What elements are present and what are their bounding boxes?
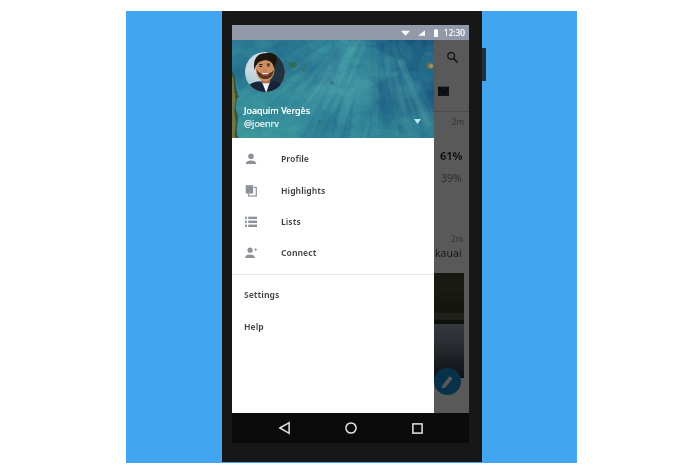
button[interactable]: Switch account: [409, 113, 425, 129]
button[interactable]: Search: [441, 46, 464, 69]
button[interactable]: Recents: [403, 414, 431, 442]
staticText: 12:30: [444, 27, 465, 38]
button[interactable]: Highlights: [232, 175, 434, 206]
button[interactable]: Messages: [432, 79, 455, 102]
staticText: 39%: [441, 171, 462, 185]
button[interactable]: Connect: [232, 237, 434, 268]
staticText: Highlights: [281, 185, 326, 197]
button[interactable]: Settings: [232, 279, 434, 310]
staticText: Lists: [281, 216, 301, 228]
button[interactable]: Profile: [232, 143, 434, 174]
button[interactable]: Help: [232, 311, 434, 342]
staticText: 2m: [452, 116, 465, 127]
staticText: Connect: [281, 247, 317, 259]
button[interactable]: Compose Tweet: [434, 368, 461, 395]
staticText: Settings: [244, 289, 280, 301]
button[interactable]: Back: [270, 414, 298, 442]
staticText: Profile: [281, 153, 309, 165]
staticText: 2m: [451, 233, 464, 244]
staticText: @joenrv: [244, 117, 279, 129]
staticText: Joaquim Vergès: [244, 104, 310, 116]
button[interactable]: Profile photo: [245, 52, 285, 92]
staticText: Help: [244, 321, 264, 333]
staticText: 61%: [440, 148, 463, 163]
button[interactable]: Lists: [232, 206, 434, 237]
staticText: kauai: [435, 246, 462, 260]
button[interactable]: Home: [337, 414, 365, 442]
